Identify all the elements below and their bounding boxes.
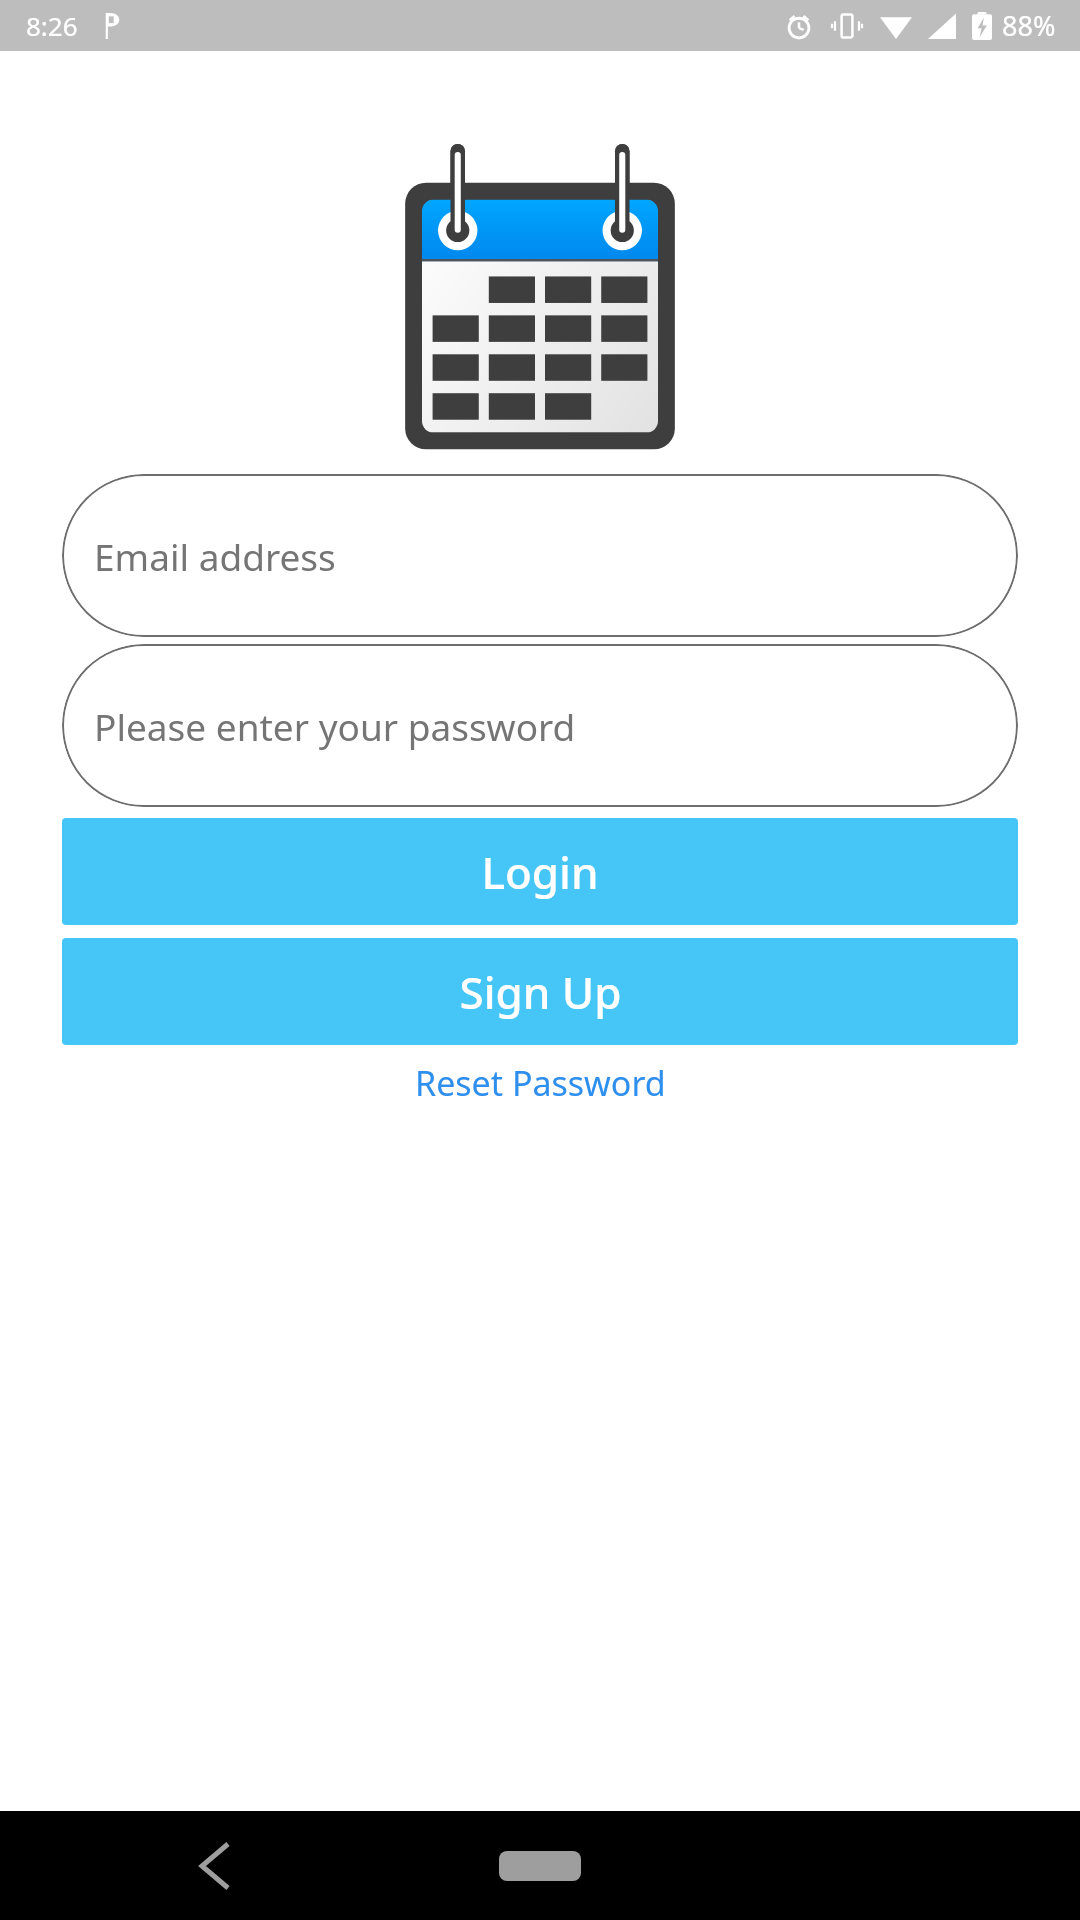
button[interactable]: Login [62,818,1018,925]
button[interactable]: Reset Password [0,1059,1080,1107]
staticText: Email address [94,531,336,581]
staticText: Sign Up [459,962,622,1022]
staticText: Reset Password [415,1060,666,1106]
staticText: Login [481,842,599,902]
button[interactable]: Back [180,1831,250,1901]
staticText: 88% [1002,7,1056,44]
button[interactable]: Email address [62,474,1018,637]
staticText: 8:26 [26,8,78,43]
button[interactable]: Sign Up [62,938,1018,1045]
staticText: Please enter your password [94,701,576,751]
button[interactable]: Please enter your password [62,644,1018,807]
button[interactable]: Home [485,1846,595,1886]
